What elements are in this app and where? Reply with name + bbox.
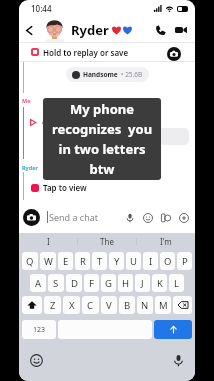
staticText: A xyxy=(35,277,42,290)
staticText: B xyxy=(124,299,131,312)
staticText: I xyxy=(47,236,50,247)
staticText: T xyxy=(97,255,103,268)
button[interactable]: Q xyxy=(22,252,38,270)
staticText: 123 xyxy=(33,325,46,335)
button[interactable]: A xyxy=(30,274,46,292)
staticText: K xyxy=(157,277,163,290)
button[interactable]: More options xyxy=(177,211,191,225)
button[interactable]: P xyxy=(177,252,192,270)
staticText: The xyxy=(100,236,114,247)
staticText: Send a chat xyxy=(49,211,99,223)
button[interactable]: M xyxy=(155,296,171,314)
button[interactable]: W xyxy=(40,252,56,270)
button[interactable]: Video call xyxy=(172,21,190,39)
button[interactable]: Back xyxy=(21,22,37,38)
staticText: W xyxy=(44,255,53,268)
button[interactable]: Emoji xyxy=(141,211,155,225)
button[interactable]: Stickers xyxy=(159,211,173,225)
staticText: F xyxy=(89,277,94,290)
staticText: Me xyxy=(22,97,31,104)
button[interactable]: Emoji keyboard xyxy=(27,351,45,369)
button[interactable]: F xyxy=(84,274,99,292)
staticText: Hold to replay or save xyxy=(43,47,129,58)
button[interactable]: The xyxy=(78,233,136,250)
staticText: V xyxy=(106,299,112,312)
staticText: Tap to view xyxy=(43,182,87,193)
staticText: X xyxy=(69,299,75,312)
staticText: • 25.6B xyxy=(121,70,143,79)
button[interactable]: I xyxy=(19,233,77,250)
button[interactable]: Tap to view xyxy=(31,182,87,193)
staticText: E xyxy=(63,255,69,268)
button[interactable]: Shift xyxy=(22,296,42,314)
button[interactable]: Open camera xyxy=(167,47,181,61)
button[interactable]: Send xyxy=(154,320,192,339)
staticText: Y xyxy=(114,255,120,268)
staticText: R xyxy=(80,255,86,268)
staticText: N xyxy=(141,299,149,312)
staticText: G xyxy=(105,277,112,290)
staticText: 10:44 xyxy=(31,3,52,14)
button[interactable]: V xyxy=(101,296,117,314)
button[interactable]: B xyxy=(119,296,135,314)
button[interactable]: U xyxy=(126,252,141,270)
button[interactable]: Camera xyxy=(23,209,40,226)
button[interactable]: I'm xyxy=(137,233,195,250)
button[interactable]: Y xyxy=(109,252,124,270)
staticText: U xyxy=(130,255,137,268)
staticText: P xyxy=(182,255,188,268)
staticText: Ryder xyxy=(71,21,109,39)
staticText: I'm xyxy=(160,236,172,247)
button[interactable]: Voice input xyxy=(169,351,187,369)
button[interactable]: Backspace xyxy=(173,296,192,314)
button[interactable]: E xyxy=(58,252,73,270)
staticText: L xyxy=(174,277,179,290)
staticText: Ryder xyxy=(22,164,38,171)
staticText: My phone recognizes you in two letters b… xyxy=(43,100,161,178)
staticText: H xyxy=(122,277,130,290)
button[interactable]: N xyxy=(137,296,153,314)
button[interactable]: H xyxy=(118,274,133,292)
button[interactable]: S xyxy=(48,274,64,292)
button[interactable]: L xyxy=(169,274,184,292)
staticText: Opened xyxy=(42,119,66,127)
staticText: O xyxy=(164,255,172,268)
button[interactable]: J xyxy=(135,274,150,292)
button[interactable]: Call xyxy=(151,21,169,39)
button[interactable]: X xyxy=(63,296,80,314)
staticText: Q xyxy=(26,255,34,268)
button[interactable]: C xyxy=(82,296,99,314)
staticText: I xyxy=(149,255,153,268)
button[interactable]: I xyxy=(143,252,158,270)
button[interactable]: 123 xyxy=(22,320,56,339)
button[interactable]: O xyxy=(160,252,175,270)
staticText: D xyxy=(71,277,78,290)
button[interactable]: D xyxy=(66,274,82,292)
button[interactable]: R xyxy=(75,252,90,270)
staticText: Z xyxy=(50,299,56,312)
staticText: M xyxy=(159,299,168,312)
staticText: Handsome xyxy=(83,70,118,79)
button[interactable]: Voice note xyxy=(123,211,137,225)
staticText: S xyxy=(53,277,59,290)
button[interactable]: Z xyxy=(44,296,61,314)
button[interactable]: Handsome xyxy=(72,70,143,79)
staticText: C xyxy=(87,299,94,312)
button[interactable]: G xyxy=(101,274,116,292)
button[interactable]: T xyxy=(92,252,107,270)
button[interactable]: K xyxy=(152,274,167,292)
staticText: J xyxy=(141,277,144,290)
